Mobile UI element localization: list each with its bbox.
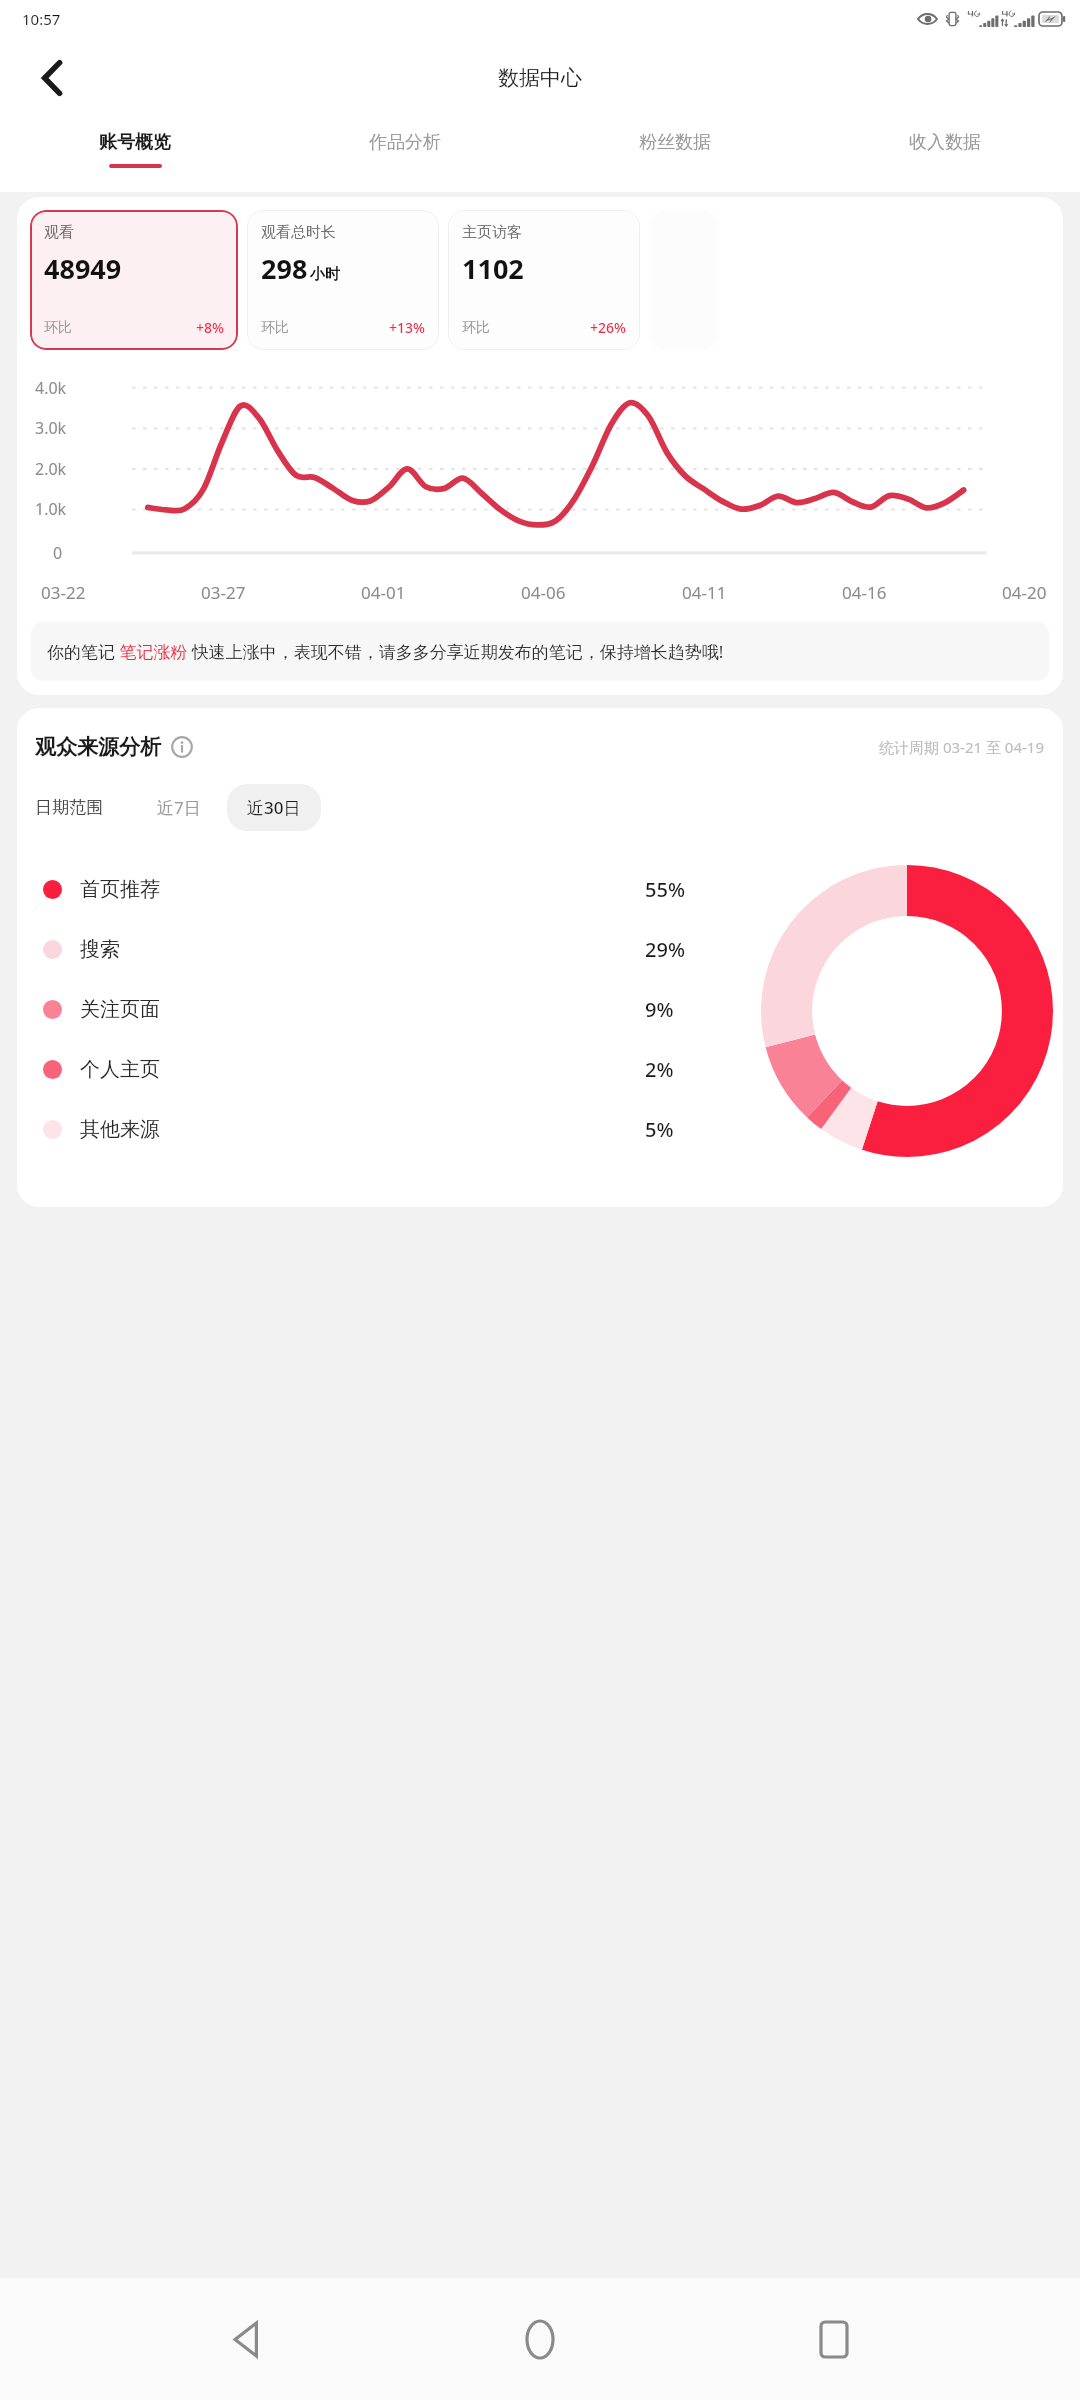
staticText: 收入数据: [909, 131, 981, 154]
button[interactable]: 关注页面: [43, 979, 751, 1039]
button[interactable]: Back: [24, 49, 82, 107]
button[interactable]: Recents: [786, 2291, 882, 2387]
button[interactable]: 说明: [170, 735, 194, 759]
staticText: 04-20: [1002, 581, 1047, 604]
staticText: 5%: [645, 1116, 674, 1143]
staticText: 搜索: [80, 937, 120, 962]
staticText: 04-06: [521, 581, 566, 604]
staticText: +13%: [389, 318, 425, 337]
staticText: 2%: [645, 1056, 674, 1083]
staticText: 首页推荐: [80, 877, 160, 902]
staticText: 账号概览: [99, 131, 171, 154]
staticText: 作品分析: [369, 131, 441, 154]
button[interactable]: Back: [198, 2291, 294, 2387]
staticText: 关注页面: [80, 997, 160, 1022]
staticText: 环比: [462, 319, 490, 337]
staticText: 观看总时长: [261, 223, 336, 242]
staticText: 3.0k: [35, 417, 67, 439]
button[interactable]: 账号概览: [0, 118, 270, 192]
button[interactable]: 你的笔记 笔记涨粉 快速上涨中，表现不错，请多多分享近期发布的笔记，保持增长趋势…: [31, 622, 1049, 681]
staticText: 2.0k: [35, 458, 67, 480]
staticText: 数据中心: [498, 65, 582, 91]
button[interactable]: 收入数据: [810, 118, 1080, 192]
staticText: 10:57: [22, 9, 61, 29]
staticText: 04-16: [842, 581, 887, 604]
staticText: 环比: [261, 319, 289, 337]
staticText: 其他来源: [80, 1117, 160, 1142]
staticText: 主页访客: [462, 223, 522, 242]
staticText: 小时: [310, 265, 340, 284]
staticText: 03-27: [201, 581, 246, 604]
staticText: 29%: [645, 936, 685, 963]
staticText: 环比: [44, 319, 72, 337]
button[interactable]: Home: [492, 2291, 588, 2387]
button[interactable]: 其他来源: [43, 1099, 751, 1159]
button[interactable]: 主页访客: [448, 210, 640, 350]
button[interactable]: 观看总时长: [247, 210, 439, 350]
staticText: 298: [261, 250, 308, 287]
staticText: 55%: [645, 876, 685, 903]
button[interactable]: 观看: [30, 210, 238, 350]
staticText: 4.0k: [35, 377, 67, 399]
staticText: +8%: [196, 318, 224, 337]
staticText: 1102: [462, 250, 524, 287]
staticText: 统计周期 03-21 至 04-19: [879, 737, 1045, 757]
staticText: 03-22: [41, 581, 86, 604]
staticText: 近7日: [157, 796, 201, 819]
button[interactable]: 搜索: [43, 919, 751, 979]
button[interactable]: 首页推荐: [43, 859, 751, 919]
staticText: 个人主页: [80, 1057, 160, 1082]
staticText: 近30日: [247, 796, 301, 819]
staticText: 04-11: [682, 581, 727, 604]
button[interactable]: 近30日: [227, 784, 321, 831]
staticText: 48949: [44, 250, 122, 287]
button[interactable]: 作品分析: [270, 118, 540, 192]
staticText: 观众来源分析: [35, 734, 161, 760]
staticText: 粉丝数据: [639, 131, 711, 154]
button[interactable]: 粉丝数据: [540, 118, 810, 192]
staticText: 0: [53, 542, 63, 564]
staticText: 观看: [44, 223, 74, 242]
button[interactable]: 个人主页: [43, 1039, 751, 1099]
staticText: 04-01: [361, 581, 406, 604]
staticText: 1.0k: [35, 498, 67, 520]
staticText: 9%: [645, 996, 674, 1023]
button[interactable]: 近7日: [139, 784, 219, 831]
staticText: 日期范围: [35, 797, 103, 818]
staticText: +26%: [590, 318, 626, 337]
staticText: 你的笔记 笔记涨粉 快速上涨中，表现不错，请多多分享近期发布的笔记，保持增长趋势…: [47, 640, 724, 663]
